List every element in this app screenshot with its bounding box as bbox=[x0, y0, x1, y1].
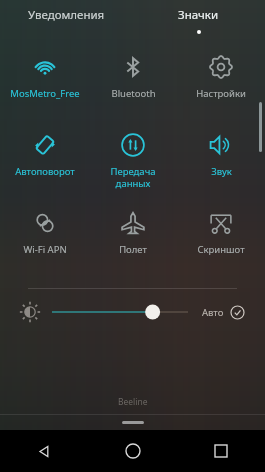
staticText: Beeline bbox=[118, 396, 148, 408]
staticText: Полет bbox=[119, 243, 147, 256]
button[interactable] bbox=[52, 300, 188, 324]
staticText: Звук bbox=[211, 165, 232, 178]
button[interactable]: Wi-Fi APN bbox=[0, 200, 89, 276]
staticText: Скриншот bbox=[197, 243, 245, 256]
button[interactable]: MosMetro_Free bbox=[0, 44, 89, 122]
staticText: Авто bbox=[202, 306, 224, 319]
staticText: Уведомления bbox=[28, 7, 105, 23]
staticText: Автоповорот bbox=[15, 165, 75, 178]
button[interactable]: Уведомления bbox=[0, 0, 132, 30]
button[interactable]: Значки bbox=[132, 0, 265, 30]
button[interactable]: Авто bbox=[202, 305, 245, 320]
staticText: Значки bbox=[178, 7, 219, 23]
button[interactable]: Звук bbox=[177, 122, 265, 200]
staticText: Wi-Fi APN bbox=[23, 243, 67, 256]
button[interactable]: Back bbox=[0, 430, 89, 472]
button[interactable]: Передача данных bbox=[89, 122, 177, 200]
button[interactable]: Настройки bbox=[177, 44, 265, 122]
staticText: Настройки bbox=[196, 87, 246, 100]
button[interactable]: Home bbox=[89, 430, 177, 472]
button[interactable]: Recent apps bbox=[177, 430, 265, 472]
staticText: Bluetooth bbox=[111, 87, 156, 100]
staticText: Передача данных bbox=[110, 165, 156, 190]
button[interactable]: Bluetooth bbox=[89, 44, 177, 122]
button[interactable]: Автоповорот bbox=[0, 122, 89, 200]
button[interactable]: Скриншот bbox=[177, 200, 265, 276]
button[interactable]: Полет bbox=[89, 200, 177, 276]
staticText: MosMetro_Free bbox=[10, 87, 80, 100]
